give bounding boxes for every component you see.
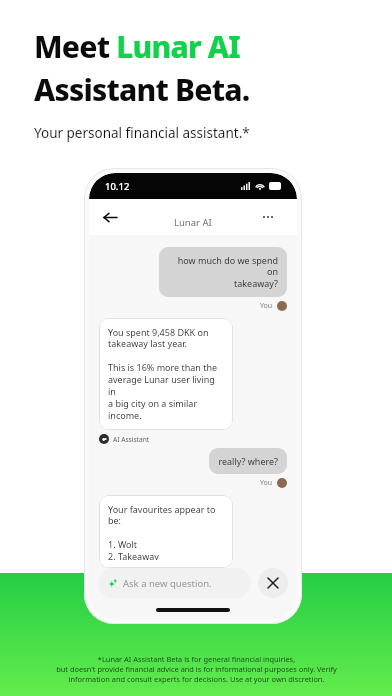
button[interactable]: really? where? xyxy=(209,448,287,474)
staticText: really? where? xyxy=(218,455,278,467)
staticText: You xyxy=(260,301,273,311)
staticText: You xyxy=(260,478,273,488)
staticText: AI Assistant xyxy=(113,435,150,444)
button[interactable]: Back xyxy=(97,204,123,230)
button[interactable]: Your favourites appear to be: 1. Wolt 2.… xyxy=(99,495,233,568)
staticText: Ask a new question. xyxy=(123,577,212,590)
staticText: Lunar AI xyxy=(174,216,212,229)
staticText: *Lunar AI Assistant Beta is for general … xyxy=(56,654,337,684)
button[interactable]: More options xyxy=(263,205,287,229)
staticText: Assistant Beta. xyxy=(34,69,250,110)
staticText: 10.12 xyxy=(105,180,130,193)
staticText: Your personal financial assistant.* xyxy=(34,124,250,142)
button[interactable]: You spent 9,458 DKK on takeaway last yea… xyxy=(99,318,233,430)
staticText: You spent 9,458 DKK on takeaway last yea… xyxy=(108,326,224,422)
button[interactable]: Close xyxy=(258,568,288,598)
button[interactable]: how much do we spend on takeaway? xyxy=(159,247,287,297)
staticText: Meet Lunar AI xyxy=(34,26,240,67)
staticText: how much do we spend on takeaway? xyxy=(168,254,278,290)
button[interactable]: Ask a new question. xyxy=(98,568,251,598)
staticText: Your favourites appear to be: 1. Wolt 2.… xyxy=(108,503,224,560)
